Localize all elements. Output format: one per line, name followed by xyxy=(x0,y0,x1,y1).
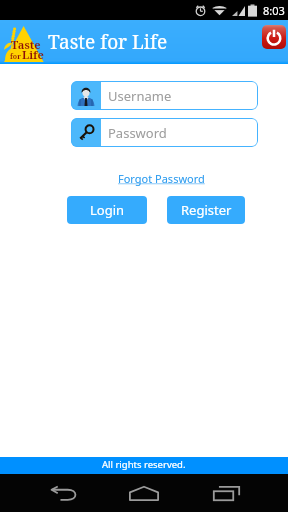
button[interactable]: Recent apps xyxy=(202,474,250,512)
staticText: Taste for Life xyxy=(48,29,168,55)
button[interactable]: Username xyxy=(71,81,258,110)
staticText: Username xyxy=(108,87,172,105)
button[interactable]: Logout xyxy=(262,25,286,49)
staticText: Login xyxy=(90,201,125,219)
button[interactable]: Password xyxy=(71,118,258,147)
staticText: for xyxy=(10,52,21,62)
staticText: Taste xyxy=(11,37,41,52)
button[interactable]: Login xyxy=(67,196,147,224)
staticText: Register xyxy=(181,201,232,219)
button[interactable]: Register xyxy=(167,196,245,224)
staticText: Life xyxy=(22,47,44,62)
staticText: Password xyxy=(108,124,167,142)
staticText: 8:03 xyxy=(263,3,285,18)
button[interactable]: Home xyxy=(120,474,168,512)
staticText: Forgot Password xyxy=(118,171,205,186)
staticText: All rights reserved. xyxy=(102,458,186,471)
button[interactable]: Forgot Password xyxy=(118,171,205,186)
button[interactable]: Back xyxy=(40,474,88,512)
